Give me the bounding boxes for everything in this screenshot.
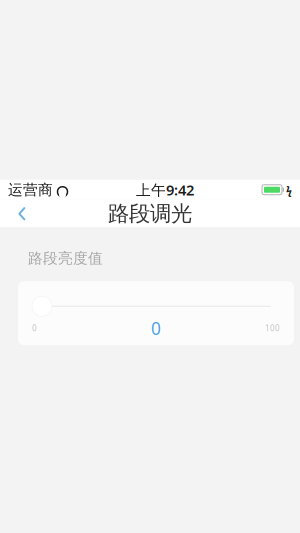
staticText: 0	[151, 317, 161, 340]
staticText: 上午9:42	[136, 180, 194, 199]
staticText: 0	[32, 323, 37, 333]
button[interactable]: 返回	[0, 200, 44, 228]
staticText: 运营商	[8, 181, 53, 199]
staticText: 路段亮度值	[28, 249, 103, 267]
staticText: 路段调光	[108, 201, 192, 227]
staticText: ϟ	[286, 183, 292, 197]
staticText: 100	[265, 323, 280, 333]
